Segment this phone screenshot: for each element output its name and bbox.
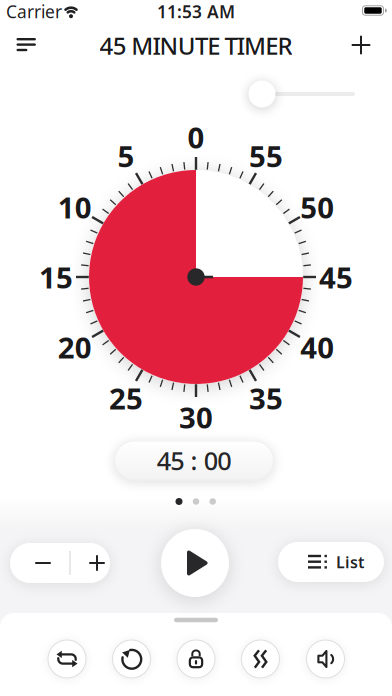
button[interactable]: Add timer: [342, 26, 379, 63]
staticText: 11:53 AM: [157, 0, 235, 23]
staticText: Carrier: [6, 0, 62, 23]
staticText: 0: [187, 117, 204, 156]
staticText: 45 : 00: [157, 444, 231, 477]
staticText: 10: [58, 187, 92, 226]
staticText: 45: [319, 257, 353, 296]
staticText: 20: [58, 327, 92, 366]
button[interactable]: Menu: [6, 28, 46, 62]
button[interactable]: Restart: [112, 639, 151, 678]
staticText: 45 MINUTE TIMER: [100, 30, 292, 61]
button[interactable]: Start timer: [161, 529, 229, 597]
button[interactable]: Sound: [306, 639, 345, 678]
button[interactable]: Increase time: [78, 544, 116, 582]
button[interactable]: Decrease time: [24, 544, 62, 582]
staticText: 35: [249, 379, 283, 418]
staticText: 25: [109, 379, 143, 418]
staticText: 5: [117, 136, 134, 175]
staticText: 50: [300, 187, 334, 226]
button[interactable]: Repeat: [47, 639, 86, 678]
staticText: 15: [39, 257, 73, 296]
button[interactable]: Lock: [176, 639, 215, 678]
button[interactable]: 45 : 00: [114, 440, 274, 480]
staticText: List: [336, 551, 364, 573]
button[interactable]: Vibration: [241, 639, 280, 678]
staticText: 40: [300, 327, 334, 366]
button[interactable]: Timer list: [278, 542, 384, 582]
staticText: 30: [179, 397, 213, 436]
button[interactable]: Slider: [248, 80, 275, 107]
staticText: 55: [249, 136, 283, 175]
